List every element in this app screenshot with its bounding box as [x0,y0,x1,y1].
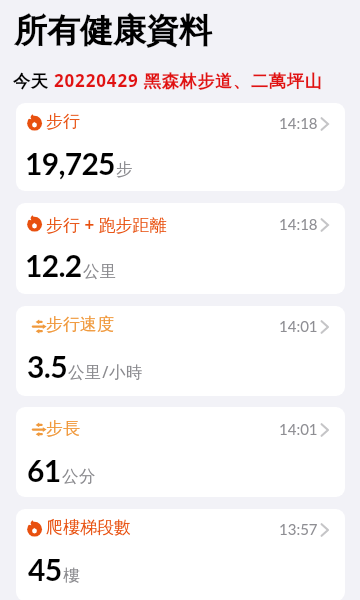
staticText: 13:57 [279,520,318,538]
staticText: 步 [116,159,134,180]
staticText: 3.5 [27,348,67,384]
button[interactable]: 爬樓梯段數 [16,509,345,600]
staticText: 19,725 [25,145,115,181]
staticText: 公里/小時 [68,360,144,383]
button[interactable]: 步行 + 跑步距離 [16,203,345,294]
staticText: 步行 [46,111,80,132]
staticText: 爬樓梯段數 [46,517,131,538]
staticText: 61 [27,452,61,488]
staticText: 步行速度 [46,314,114,335]
staticText: 所有健康資料 [14,10,212,52]
staticText: 步長 [46,418,80,439]
staticText: 公里 [83,261,118,282]
staticText: 14:18 [279,114,318,132]
button[interactable]: 步長 [16,407,345,497]
staticText: 45 [28,551,62,587]
staticText: 14:01 [279,317,318,335]
button[interactable]: 步行 [16,103,345,191]
staticText: 14:01 [279,420,318,438]
button[interactable]: 步行速度 [16,306,345,396]
staticText: 步行 + 跑步距離 [46,213,167,236]
staticText: 今天 20220429 黑森林步道、二萬坪山 [13,69,323,92]
staticText: 14:18 [279,215,318,233]
staticText: 12.2 [25,247,82,283]
staticText: 公分 [62,466,97,487]
staticText: 樓 [63,565,81,586]
